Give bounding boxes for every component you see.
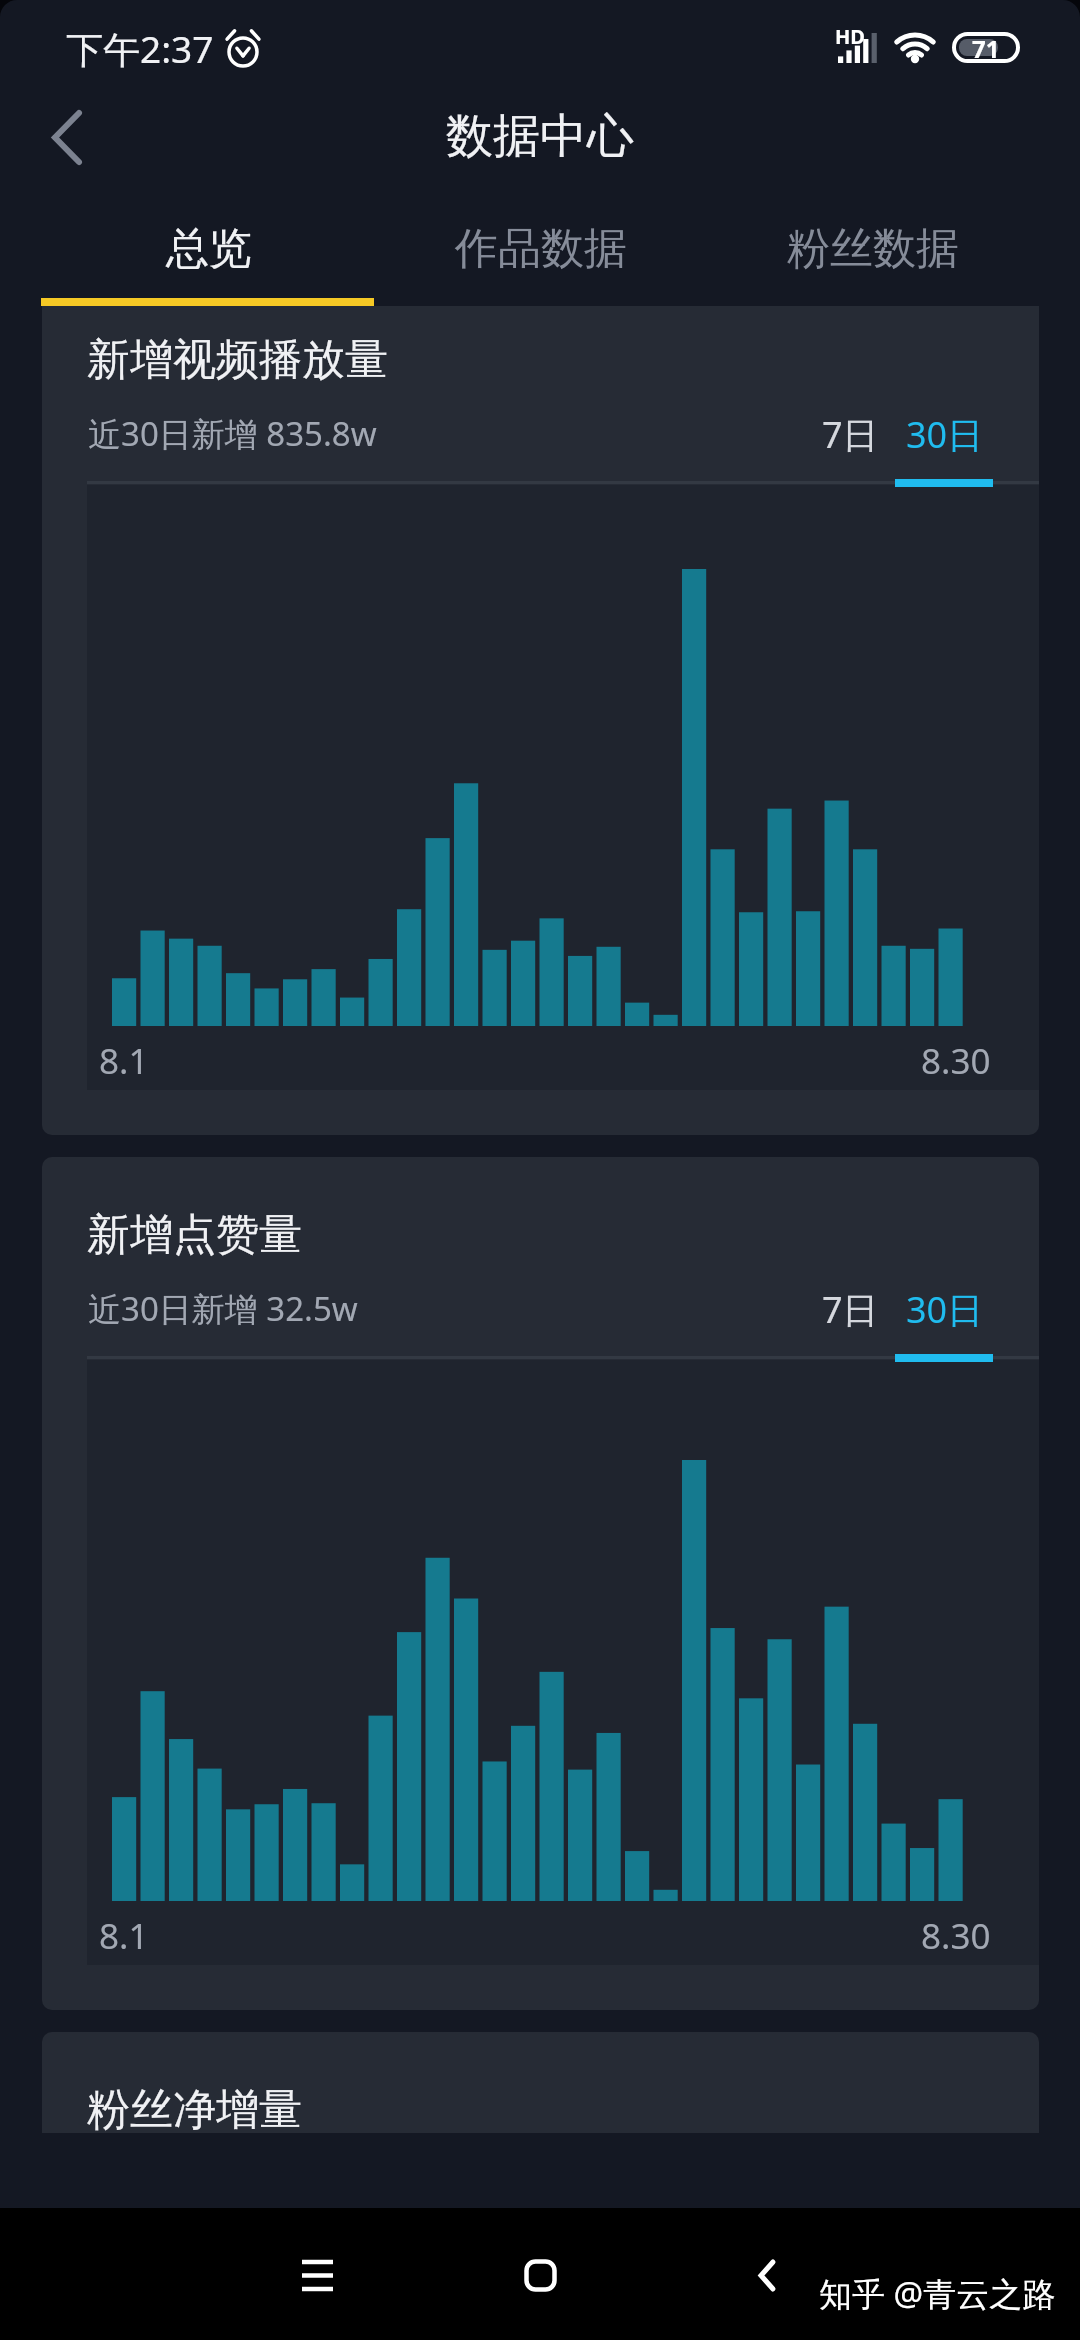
staticText: 粉丝数据	[787, 222, 959, 276]
button[interactable]: 30日	[887, 394, 1003, 487]
button[interactable]: Recent apps	[247, 2208, 387, 2340]
staticText: 新增视频播放量	[87, 333, 388, 387]
staticText: 30日	[906, 410, 984, 459]
button[interactable]: 粉丝净增量	[42, 2032, 1039, 2133]
staticText: 粉丝净增量	[87, 2083, 302, 2133]
staticText: 8.1	[99, 1037, 149, 1085]
button[interactable]: 7日	[790, 1269, 910, 1353]
staticText: 近30日新增 32.5w	[88, 1286, 358, 1331]
staticText: 7日	[822, 1285, 879, 1334]
staticText: 7日	[822, 410, 879, 459]
button[interactable]: Back	[709, 2208, 829, 2340]
button[interactable]: Back	[0, 88, 140, 192]
staticText: 总览	[166, 222, 252, 276]
button[interactable]: 粉丝数据	[706, 192, 1038, 306]
staticText: 新增点赞量	[87, 1208, 302, 1262]
staticText: 数据中心	[446, 107, 634, 166]
staticText: 知乎 @青云之路	[819, 2271, 1056, 2316]
button[interactable]: 总览	[42, 192, 374, 306]
staticText: 作品数据	[455, 222, 627, 276]
staticText: 8.30	[921, 1037, 991, 1085]
button[interactable]: 新增点赞量	[42, 1157, 1039, 2010]
button[interactable]: 7日	[790, 394, 910, 478]
staticText: 8.30	[921, 1912, 991, 1960]
staticText: 近30日新增 835.8w	[88, 411, 377, 456]
staticText: 下午2:37	[66, 23, 214, 74]
staticText: 71	[972, 32, 1000, 63]
staticText: 8.1	[99, 1912, 149, 1960]
button[interactable]: Home	[470, 2208, 610, 2340]
button[interactable]: 新增视频播放量	[42, 306, 1039, 1135]
button[interactable]: 作品数据	[374, 192, 706, 306]
button[interactable]: 30日	[887, 1269, 1003, 1362]
staticText: 30日	[906, 1285, 984, 1334]
staticText: HD	[835, 23, 865, 50]
